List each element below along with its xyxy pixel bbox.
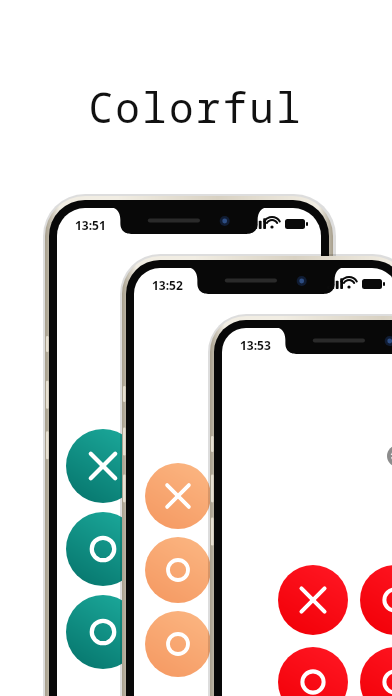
button[interactable]: Color button [322,588,392,658]
button[interactable]: Color button [240,588,310,658]
button[interactable]: Color button [322,668,392,696]
button[interactable]: Color button [240,668,310,696]
button[interactable]: Settings [362,443,392,473]
